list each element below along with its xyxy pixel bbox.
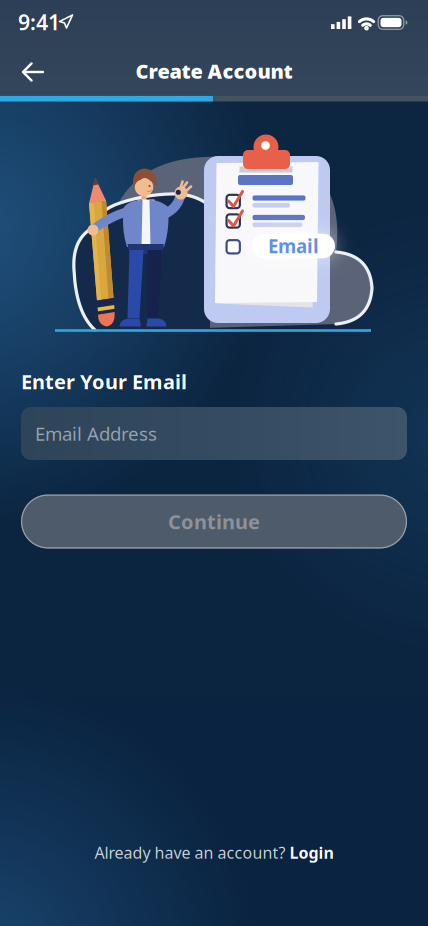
staticText: Login (289, 842, 333, 863)
button[interactable]: Continue (21, 494, 407, 548)
button[interactable]: Already have an account? (94, 842, 333, 863)
staticText: Enter Your Email (21, 368, 187, 395)
staticText: Create Account (135, 58, 292, 84)
staticText: Email Address (35, 421, 157, 446)
button[interactable]: Back (17, 54, 57, 90)
staticText: Already have an account? (94, 842, 285, 863)
staticText: Email (268, 234, 319, 258)
staticText: Continue (168, 508, 260, 535)
staticText: 9:41 (18, 8, 60, 36)
